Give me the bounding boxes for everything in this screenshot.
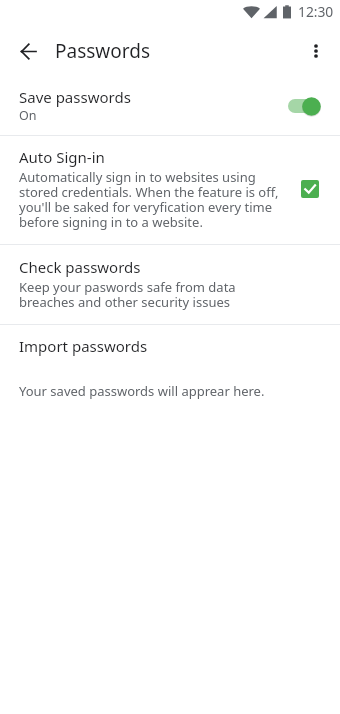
staticText: Auto Sign-in: [19, 147, 105, 167]
staticText: 12:30: [298, 2, 334, 21]
button[interactable]: Save passwords: [0, 76, 340, 135]
staticText: Save passwords: [19, 87, 131, 107]
button[interactable]: Check passwords: [0, 245, 340, 324]
staticText: Import passwords: [19, 336, 148, 356]
staticText: Your saved passwords will apprear here.: [19, 382, 265, 400]
button[interactable]: Auto Sign-in: [0, 136, 340, 244]
staticText: Passwords: [55, 38, 151, 64]
staticText: Keep your paswords safe from data breach…: [19, 278, 243, 310]
button[interactable]: Back: [7, 30, 49, 72]
button[interactable]: Import passwords: [0, 325, 340, 367]
staticText: On: [19, 107, 37, 124]
button[interactable]: More options: [296, 31, 336, 71]
staticText: Check passwords: [19, 257, 141, 277]
staticText: Automatically sign in to websites using …: [19, 168, 281, 230]
